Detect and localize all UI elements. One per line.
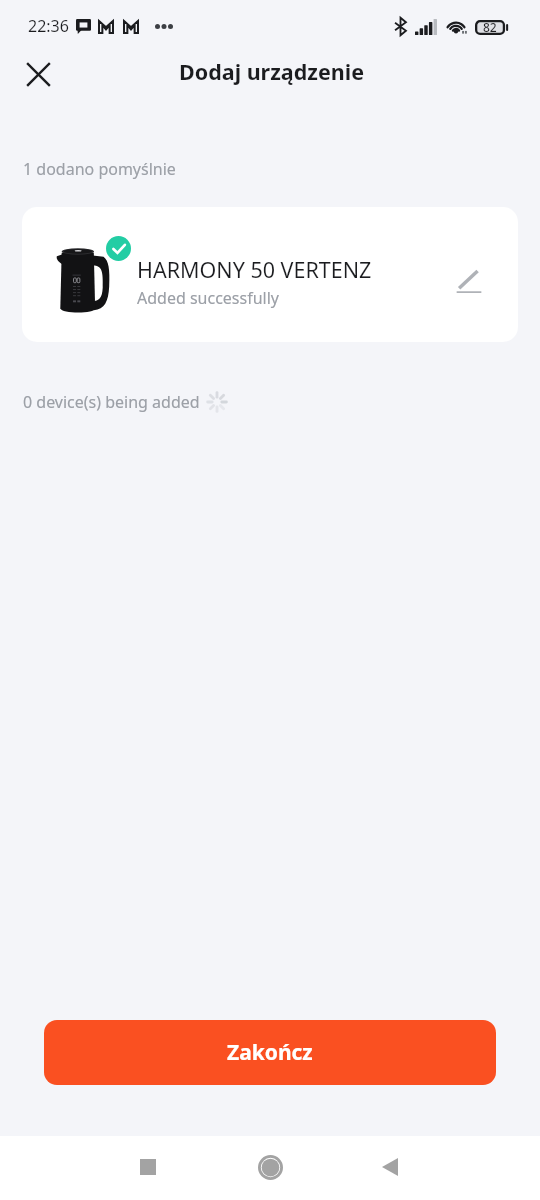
- staticText: 22:36: [28, 15, 69, 37]
- staticText: 1 dodano pomyślnie: [23, 158, 176, 180]
- staticText: Dodaj urządzenie: [179, 57, 364, 86]
- button[interactable]: HARMONY 50 VERTENZ: [22, 207, 518, 342]
- staticText: HARMONY 50 VERTENZ: [137, 255, 372, 284]
- button[interactable]: Zakończ: [44, 1020, 496, 1085]
- staticText: Zakończ: [227, 1038, 313, 1067]
- staticText: Added successfully: [137, 287, 280, 309]
- button[interactable]: Home: [246, 1143, 294, 1191]
- staticText: 0 device(s) being added: [23, 391, 200, 413]
- button[interactable]: Recent apps: [124, 1143, 172, 1191]
- staticText: 82: [483, 19, 497, 35]
- button[interactable]: Close: [14, 51, 62, 97]
- button[interactable]: Edit device name: [446, 258, 492, 304]
- button[interactable]: Back: [366, 1143, 414, 1191]
